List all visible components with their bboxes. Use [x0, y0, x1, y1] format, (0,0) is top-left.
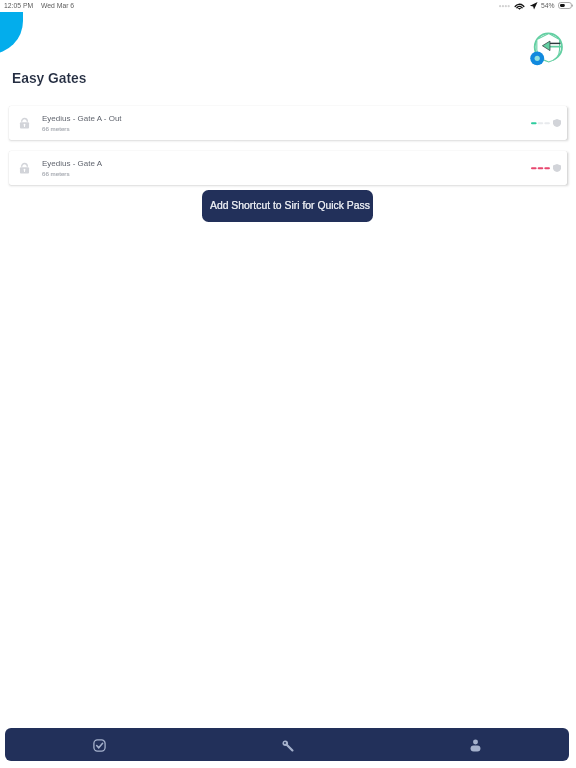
staticText: Eyedius - Gate A: [42, 159, 103, 168]
button[interactable]: Passes: [5, 728, 193, 761]
staticText: Easy Gates: [12, 71, 87, 86]
staticText: 66 meters: [42, 170, 70, 177]
button[interactable]: Keys: [193, 728, 381, 761]
staticText: Add Shortcut to Siri for Quick Pass: [210, 200, 370, 212]
staticText: Wed Mar 6: [41, 2, 75, 10]
button[interactable]: Eyedius - Gate A: [9, 151, 567, 185]
staticText: 66 meters: [42, 125, 70, 132]
staticText: 12:05 PM: [4, 2, 34, 10]
button[interactable]: Eyedius - Gate A - Out: [9, 106, 567, 140]
button[interactable]: Profile: [381, 728, 569, 761]
button[interactable]: Add Shortcut to Siri for Quick Pass: [202, 190, 373, 222]
staticText: Eyedius - Gate A - Out: [42, 114, 122, 123]
staticText: 54%: [541, 2, 555, 10]
button[interactable]: Secure pass status: [528, 27, 568, 67]
